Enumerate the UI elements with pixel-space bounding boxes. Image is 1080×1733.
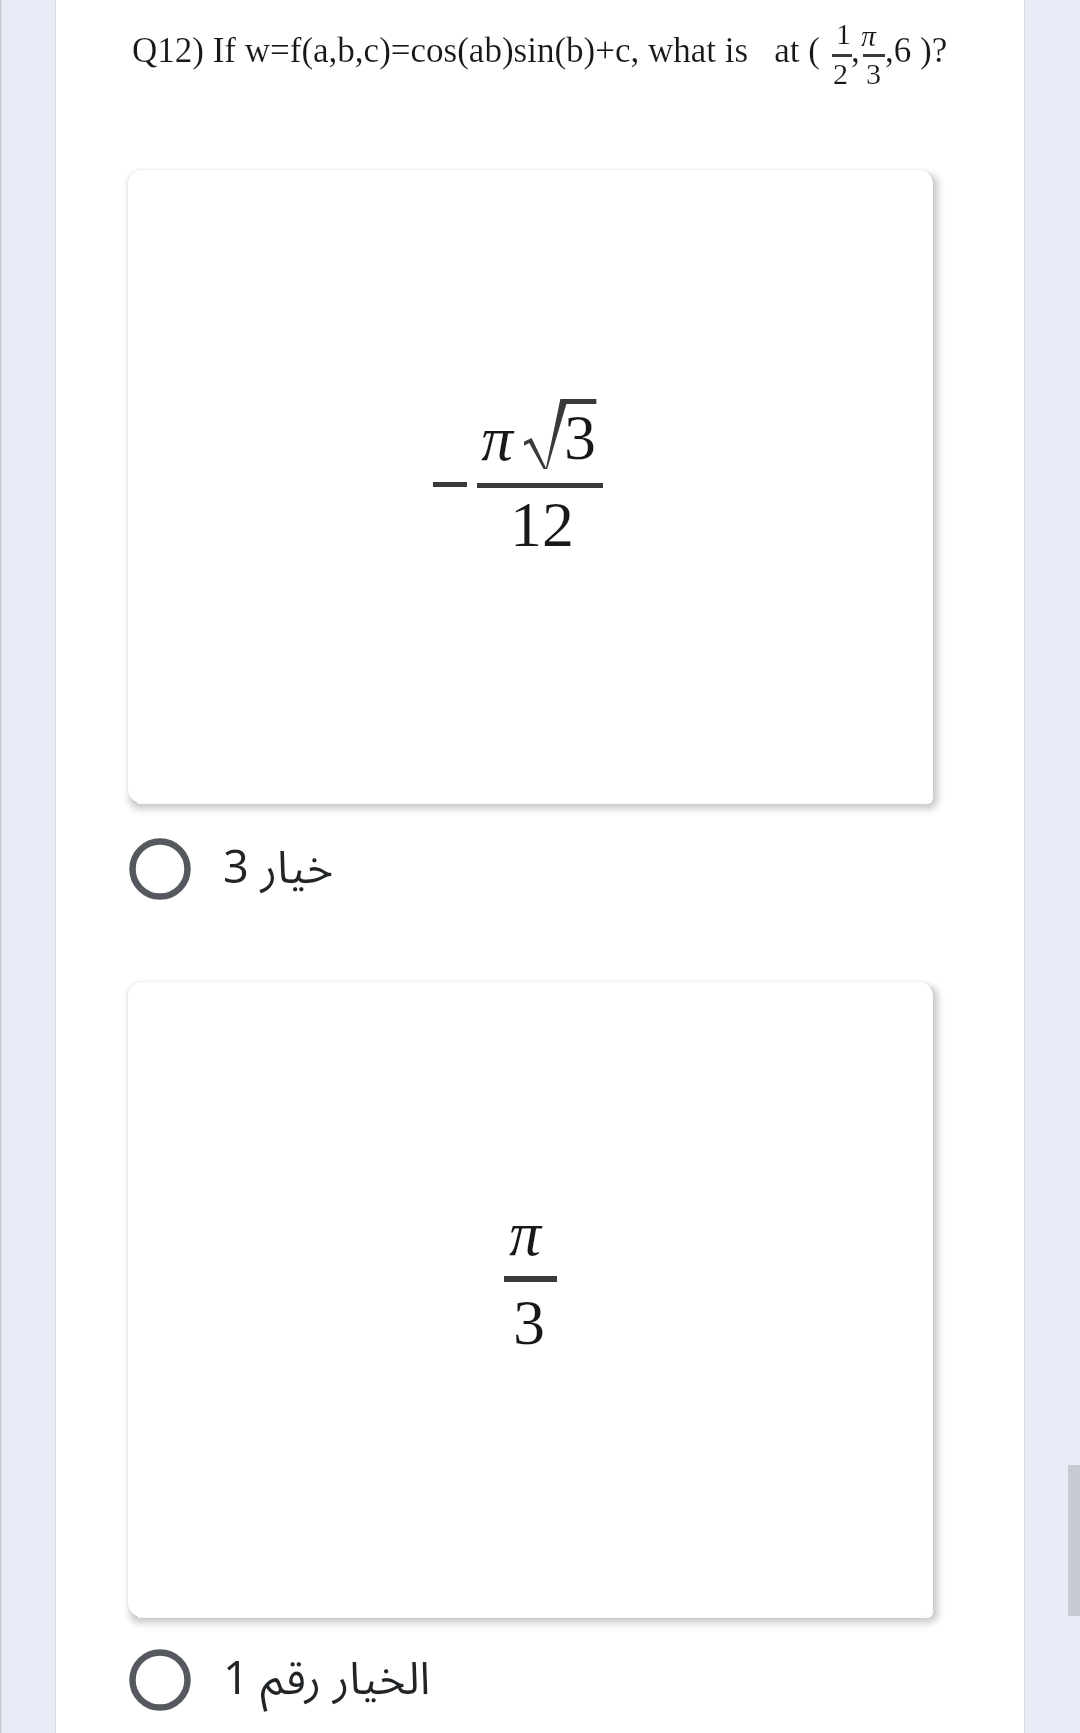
staticText: π (481, 403, 514, 474)
staticText: الخيار رقم 1 (223, 1632, 431, 1722)
button[interactable]: Answer choice image (128, 982, 933, 1617)
staticText: 12 (510, 489, 574, 560)
other: Select this option (129, 1649, 191, 1711)
other: Select this option (129, 838, 191, 900)
staticText: , (851, 31, 860, 70)
button[interactable]: Select this option (56, 824, 1024, 914)
button[interactable]: Select this option (56, 1635, 1024, 1725)
staticText: π (861, 19, 877, 52)
staticText: π (509, 1198, 542, 1269)
staticText: 3 (866, 57, 881, 90)
button[interactable]: Answer choice image (128, 170, 933, 803)
staticText: ,6 )? (885, 31, 948, 70)
staticText: 1 (836, 17, 851, 50)
staticText: خيار 3 (223, 821, 334, 911)
staticText: Q12) If w=f(a,b,c)=cos(ab)sin(b)+c, what… (132, 31, 821, 70)
staticText: 3 (564, 402, 596, 473)
staticText: 2 (833, 57, 848, 90)
staticText: 3 (513, 1287, 545, 1358)
